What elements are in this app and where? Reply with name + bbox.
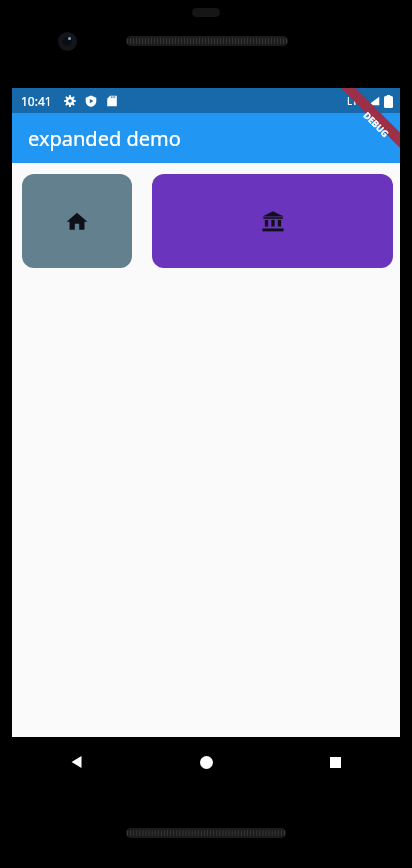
- button[interactable]: Home: [22, 174, 132, 268]
- staticText: DEBUG: [361, 109, 392, 139]
- staticText: LTE: [347, 94, 364, 108]
- staticText: 10:41: [21, 93, 52, 109]
- button[interactable]: Back: [12, 737, 142, 787]
- button[interactable]: Home: [142, 737, 271, 787]
- staticText: expanded demo: [28, 125, 181, 152]
- button[interactable]: Recent apps: [271, 737, 400, 787]
- button[interactable]: Account balance: [152, 174, 393, 268]
